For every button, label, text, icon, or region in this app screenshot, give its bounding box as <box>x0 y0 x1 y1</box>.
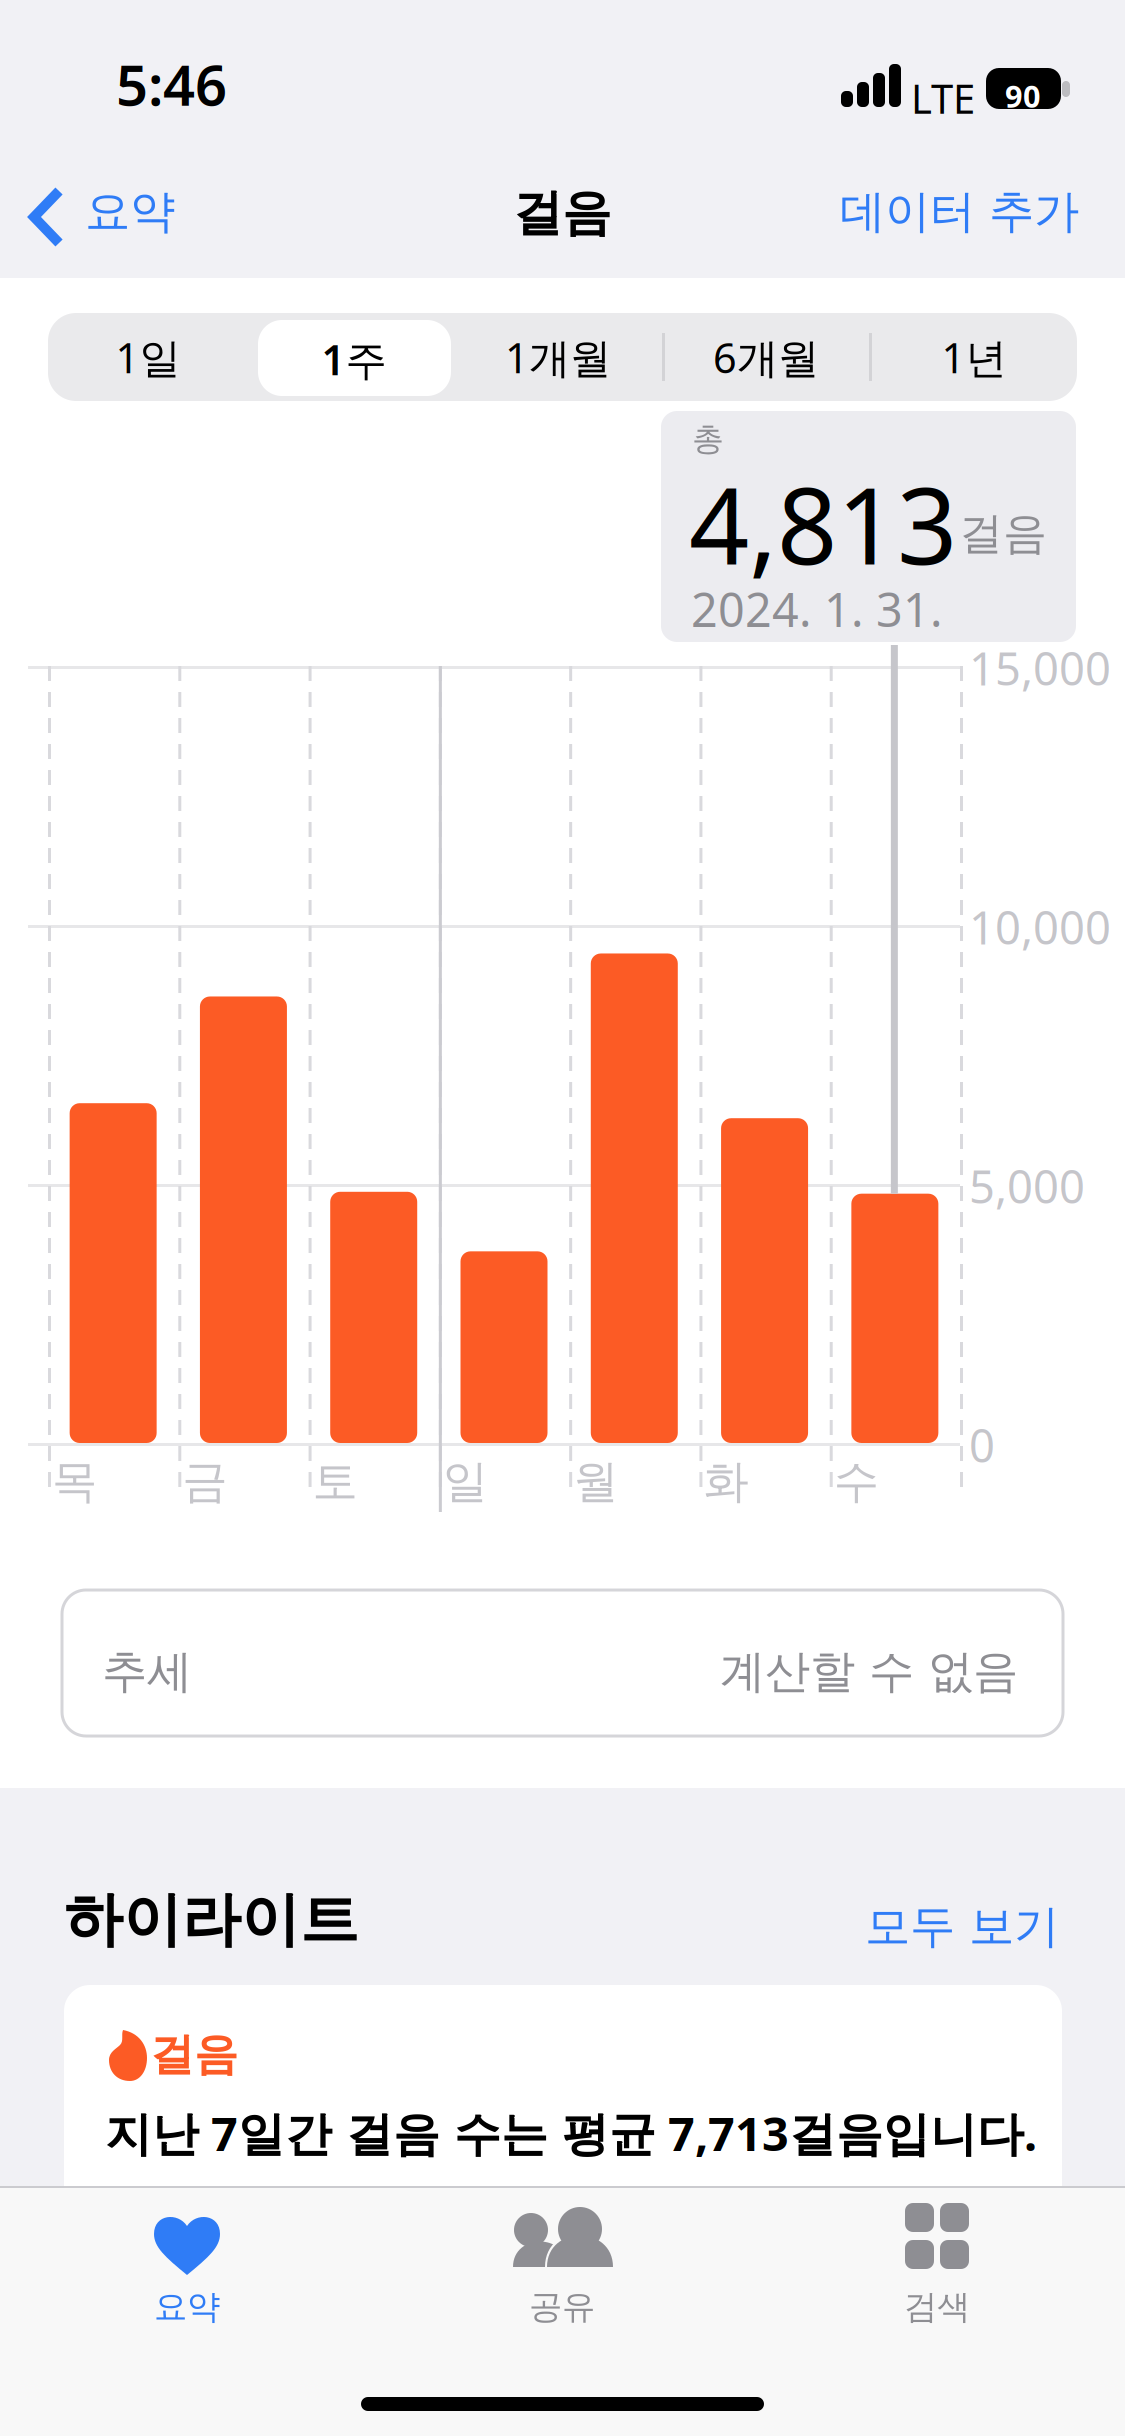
staticText: 추세 <box>102 1643 192 1700</box>
staticText: 검색 <box>904 2286 970 2328</box>
staticText: 걸음 <box>513 182 611 244</box>
staticText: 6개월 <box>713 329 819 385</box>
staticText: 15,000 <box>969 637 1111 699</box>
staticText: 1개월 <box>505 329 611 385</box>
button[interactable]: 1일 <box>45 313 251 401</box>
button[interactable]: 검색 <box>750 2186 1125 2336</box>
staticText: 요약 <box>154 2286 220 2328</box>
button[interactable]: 요약 <box>0 160 250 270</box>
staticText: 10,000 <box>969 896 1111 958</box>
staticText: 수 <box>834 1453 879 1510</box>
staticText: 목 <box>52 1453 97 1510</box>
staticText: 1년 <box>941 329 1006 385</box>
staticText: 걸음 <box>959 506 1047 561</box>
button[interactable]: 1년 <box>871 313 1077 401</box>
staticText: LTE <box>911 71 975 125</box>
staticText: 1주 <box>321 331 386 387</box>
button[interactable]: 모두 보기 <box>753 1880 1083 1972</box>
staticText: 2024. 1. 31. <box>691 577 943 641</box>
staticText: 화 <box>703 1453 748 1510</box>
button[interactable]: 요약 <box>0 2186 375 2336</box>
staticText: 공유 <box>529 2286 595 2328</box>
button[interactable]: 1개월 <box>455 313 661 401</box>
staticText: 지난 7일간 걸음 수는 평균 7,713걸음입니다. <box>105 2101 1037 2165</box>
staticText: 4,813 <box>689 452 957 595</box>
staticText: 총 <box>692 419 724 459</box>
button[interactable]: 데이터 추가 <box>725 160 1125 270</box>
button[interactable]: 걸음 하이라이트 <box>64 1985 1062 2245</box>
staticText: 모두 보기 <box>865 1898 1059 1955</box>
button[interactable]: 6개월 <box>663 313 869 401</box>
staticText: 월 <box>573 1453 618 1510</box>
staticText: 5,000 <box>969 1155 1085 1217</box>
staticText: 90 <box>1005 75 1041 117</box>
button[interactable]: 공유 <box>375 2186 750 2336</box>
staticText: 0 <box>969 1414 995 1476</box>
button[interactable]: 1주 <box>258 320 451 396</box>
staticText: 걸음 <box>150 2027 238 2082</box>
staticText: 5:46 <box>116 46 227 122</box>
staticText: 요약 <box>85 183 175 240</box>
staticText: 하이라이트 <box>64 1883 359 1957</box>
staticText: 1일 <box>115 329 180 385</box>
staticText: 일 <box>443 1453 488 1510</box>
staticText: 계산할 수 없음 <box>720 1643 1018 1700</box>
staticText: 데이터 추가 <box>840 183 1079 240</box>
staticText: 금 <box>182 1453 227 1510</box>
staticText: 토 <box>313 1453 358 1510</box>
